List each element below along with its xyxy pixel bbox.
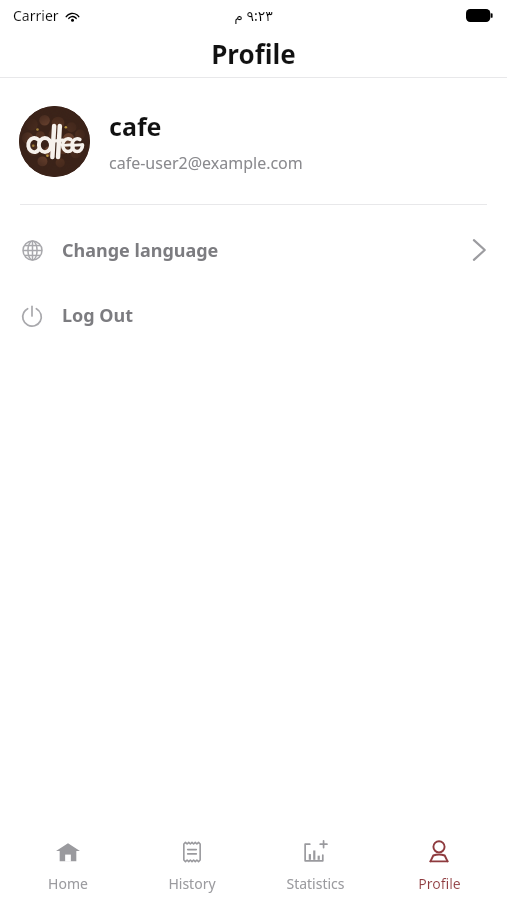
staticText: Home [48,874,88,893]
staticText: Profile [418,874,461,893]
button[interactable]: Profile [384,822,494,893]
button[interactable]: History [137,822,247,893]
staticText: cafe-user2@example.com [109,152,303,174]
button[interactable]: Statistics [260,822,370,893]
staticText: Change language [62,238,219,263]
staticText: Carrier [13,6,59,25]
staticText: History [168,874,216,893]
staticText: ٩:٢٣ م [234,6,273,25]
staticText: Statistics [286,874,345,893]
button[interactable]: Change language [0,229,507,271]
button[interactable]: Log Out [0,295,507,336]
button[interactable]: Home [13,822,123,893]
staticText: Log Out [62,303,134,328]
staticText: cafe [109,109,162,143]
staticText: Profile [211,36,296,71]
